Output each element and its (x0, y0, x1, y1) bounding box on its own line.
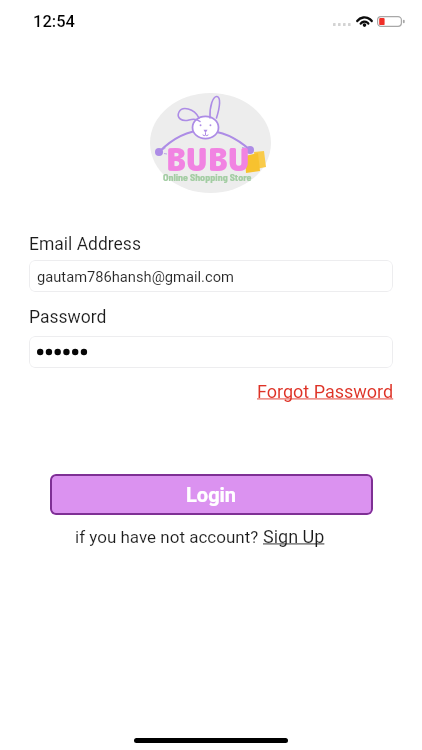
other: Battery (377, 16, 405, 27)
staticText: Online Shopping Store (163, 171, 252, 183)
button[interactable] (29, 336, 393, 368)
staticText: if you have not account? (75, 527, 263, 547)
staticText: 12:54 (33, 12, 75, 31)
staticText: Password (29, 307, 107, 328)
staticText: Forgot Password (257, 381, 394, 402)
button[interactable]: Forgot Password (255, 380, 396, 403)
staticText: Email Address (29, 234, 141, 255)
button[interactable]: Sign Up (263, 526, 325, 547)
staticText: Sign Up (263, 526, 325, 547)
button[interactable]: gautam786hansh@gmail.com (29, 260, 393, 292)
staticText: gautam786hansh@gmail.com (37, 268, 234, 285)
other: Wi-Fi (356, 16, 373, 27)
staticText: Login (186, 483, 237, 506)
button[interactable]: Login (50, 474, 373, 515)
staticText: BUBU (166, 138, 250, 181)
other: Signal (333, 23, 351, 26)
